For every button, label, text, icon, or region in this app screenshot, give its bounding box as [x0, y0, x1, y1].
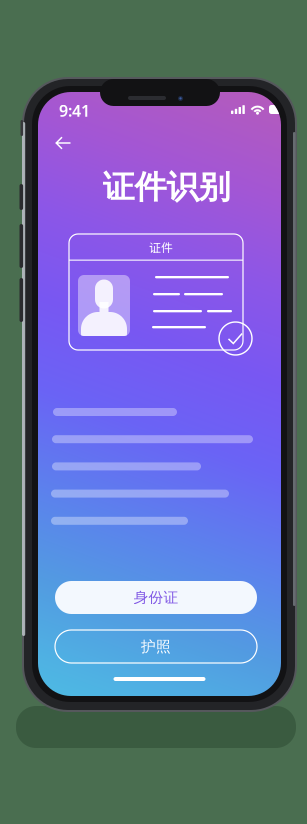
button[interactable]: 身份证 — [55, 581, 257, 614]
staticText: 9:41 — [59, 100, 90, 121]
staticText: 身份证 — [133, 588, 178, 607]
staticText: 证件识别 — [102, 167, 230, 207]
button[interactable]: Back — [46, 128, 80, 158]
button[interactable]: 护照 — [55, 630, 257, 663]
staticText: 护照 — [141, 637, 171, 656]
staticText: 证件 — [149, 238, 173, 256]
